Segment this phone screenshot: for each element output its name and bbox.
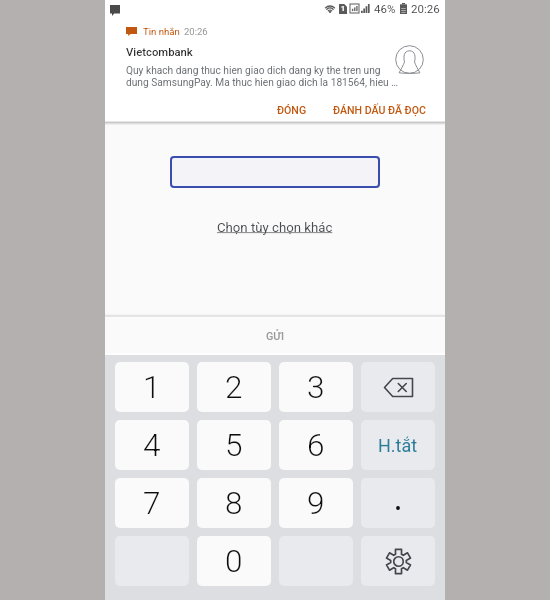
button[interactable]: ĐÁNH DẤU ĐÃ ĐỌC bbox=[326, 100, 433, 120]
staticText: 5 bbox=[225, 427, 243, 464]
staticText: Vietcombank bbox=[126, 46, 193, 59]
staticText: dung SamsungPay. Ma thuc hien giao dich … bbox=[126, 77, 398, 89]
staticText: GỬI bbox=[266, 330, 285, 343]
other: Contact avatar bbox=[395, 45, 424, 74]
button[interactable]: Chọn tùy chọn khác bbox=[217, 220, 333, 235]
button[interactable]: Period bbox=[361, 478, 435, 528]
staticText: 9 bbox=[307, 485, 325, 522]
staticText: 6 bbox=[307, 427, 325, 464]
staticText: ĐÓNG bbox=[277, 104, 307, 116]
button[interactable]: 8 bbox=[197, 478, 271, 528]
staticText: 0 bbox=[225, 543, 243, 580]
button[interactable]: 7 bbox=[115, 478, 189, 528]
staticText: 7 bbox=[143, 485, 161, 522]
staticText: 20:26 bbox=[411, 2, 440, 15]
staticText: 2 bbox=[225, 369, 243, 406]
staticText: ĐÁNH DẤU ĐÃ ĐỌC bbox=[333, 104, 426, 116]
button[interactable]: Backspace bbox=[361, 362, 435, 412]
staticText: 20:26 bbox=[184, 26, 208, 37]
staticText: 3 bbox=[307, 369, 325, 406]
button[interactable]: Keyboard settings bbox=[361, 536, 435, 586]
staticText: Tin nhắn bbox=[143, 26, 180, 37]
button[interactable] bbox=[170, 156, 380, 188]
button[interactable]: 3 bbox=[279, 362, 353, 412]
button[interactable]: 2 bbox=[197, 362, 271, 412]
button[interactable]: ĐÓNG bbox=[270, 100, 314, 120]
button[interactable]: H.tắt bbox=[361, 420, 435, 470]
button[interactable]: 9 bbox=[279, 478, 353, 528]
button[interactable]: 6 bbox=[279, 420, 353, 470]
staticText: 1 bbox=[143, 369, 161, 406]
staticText: H.tắt bbox=[378, 435, 418, 456]
staticText: 46% bbox=[374, 2, 396, 15]
staticText: 4 bbox=[143, 427, 161, 464]
button[interactable]: 0 bbox=[197, 536, 271, 586]
staticText: Quy khach dang thuc hien giao dich dang … bbox=[126, 65, 381, 77]
button[interactable]: 4 bbox=[115, 420, 189, 470]
staticText: 8 bbox=[225, 485, 243, 522]
staticText: 1 bbox=[341, 5, 346, 13]
button[interactable]: 1 bbox=[115, 362, 189, 412]
button[interactable]: GỬI bbox=[105, 318, 445, 354]
button[interactable]: 5 bbox=[197, 420, 271, 470]
